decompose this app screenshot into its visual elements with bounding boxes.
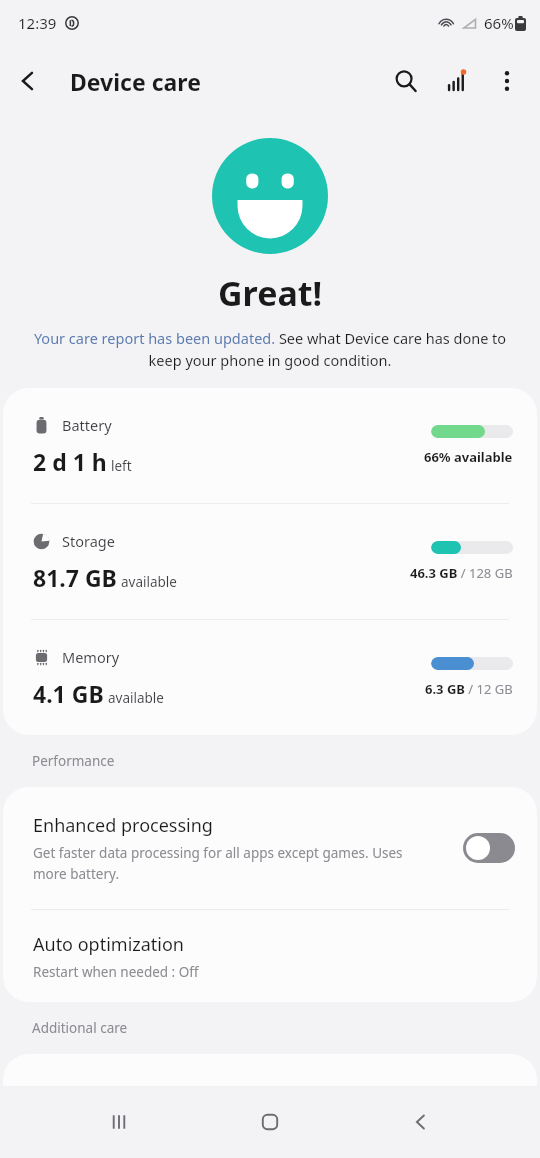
staticText: left — [111, 457, 132, 475]
button[interactable]: Home — [238, 1090, 302, 1154]
staticText: Get faster data processing for all apps … — [33, 844, 425, 883]
staticText: 66% — [484, 13, 514, 33]
staticText: 12:39 — [18, 13, 57, 33]
staticText: 46.3 GB / 128 GB — [410, 564, 513, 582]
staticText: 2 d 1 h — [33, 446, 107, 477]
button[interactable]: Memory — [3, 620, 537, 735]
button[interactable]: More options — [482, 56, 532, 106]
button[interactable]: Auto optimization — [3, 910, 537, 1002]
staticText: Your care report has been updated. See w… — [20, 328, 520, 370]
staticText: 6.3 GB / 12 GB — [425, 680, 513, 698]
staticText: Performance — [32, 752, 115, 770]
staticText: Restart when needed : Off — [33, 963, 199, 981]
button[interactable]: Storage — [3, 504, 537, 619]
staticText: available — [108, 689, 164, 707]
button[interactable]: Battery — [3, 388, 537, 503]
staticText: 66% available — [424, 448, 513, 466]
button[interactable] — [3, 1054, 537, 1094]
button[interactable]: Care report — [432, 56, 482, 106]
staticText: Device care — [70, 66, 201, 97]
staticText: 4.1 GB — [33, 678, 104, 709]
staticText: Enhanced processing — [33, 813, 213, 838]
staticText: Memory — [62, 647, 120, 667]
staticText: Battery — [62, 415, 112, 435]
staticText: Auto optimization — [33, 932, 184, 957]
staticText: 81.7 GB — [33, 562, 117, 593]
button[interactable]: Search — [380, 55, 432, 107]
staticText: available — [121, 573, 177, 591]
button[interactable]: Back — [389, 1090, 453, 1154]
button[interactable]: Navigate up — [0, 53, 56, 109]
staticText: Great! — [218, 270, 323, 316]
button[interactable]: Enhanced processing toggle, off — [463, 833, 515, 863]
button[interactable]: Recent apps — [87, 1090, 151, 1154]
staticText: Storage — [62, 531, 115, 551]
button[interactable]: Enhanced processing — [3, 787, 537, 909]
staticText: Additional care — [32, 1019, 128, 1037]
